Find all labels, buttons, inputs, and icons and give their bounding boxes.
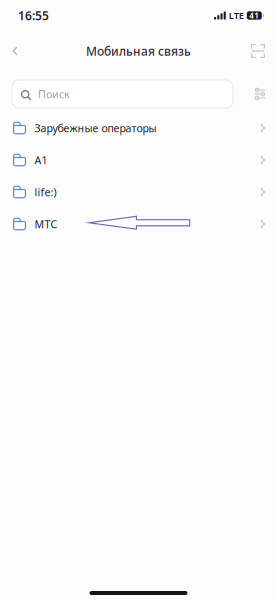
staticText: life:) (34, 185, 56, 199)
button[interactable]: life:) (0, 176, 277, 208)
button[interactable]: Зарубежные операторы (0, 112, 277, 144)
staticText: LTE (229, 9, 244, 22)
button[interactable]: Scan (244, 36, 272, 66)
button[interactable]: Back (0, 36, 30, 66)
staticText: A1 (34, 153, 47, 167)
button[interactable]: МТС (0, 208, 277, 240)
button[interactable]: Filters (248, 80, 272, 108)
staticText: Поиск (38, 87, 70, 101)
staticText: МТС (34, 217, 57, 231)
button[interactable]: Поиск (12, 80, 233, 108)
button[interactable]: A1 (0, 144, 277, 176)
staticText: Зарубежные операторы (34, 121, 156, 135)
staticText: 41 (249, 10, 259, 21)
staticText: Мобильная связь (86, 43, 191, 59)
staticText: 16:55 (18, 7, 49, 23)
